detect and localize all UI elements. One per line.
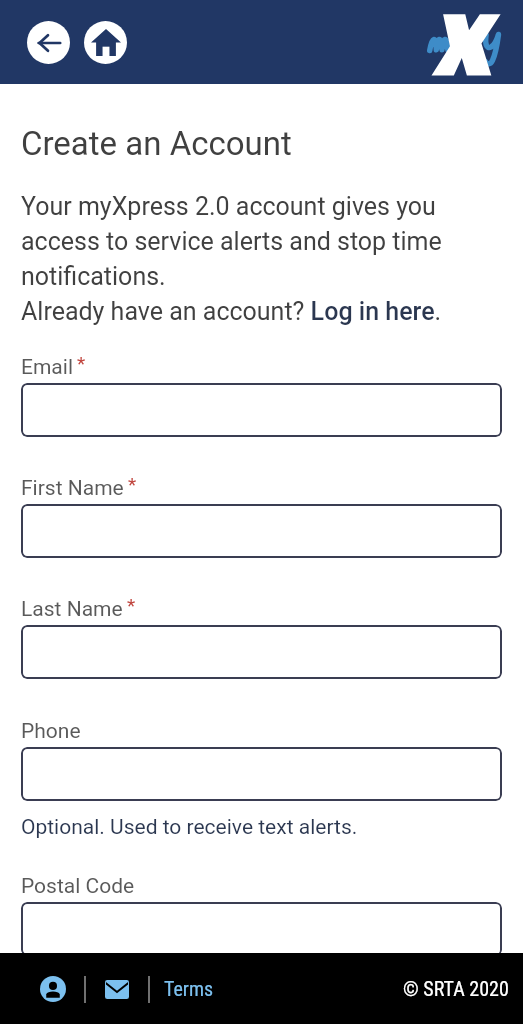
staticText: © SRTA 2020 <box>403 977 509 1001</box>
button[interactable] <box>21 902 502 956</box>
staticText: Postal Code <box>21 874 135 898</box>
button[interactable] <box>21 383 502 437</box>
button[interactable] <box>21 747 502 801</box>
staticText: * <box>127 595 136 617</box>
staticText: * <box>128 474 137 496</box>
staticText: Terms <box>164 977 214 1001</box>
staticText: First Name <box>21 476 124 500</box>
staticText: Optional. Used to receive text alerts. <box>21 814 358 839</box>
staticText: Your myXpress 2.0 account gives you acce… <box>21 187 502 292</box>
button[interactable]: Account <box>36 972 70 1006</box>
staticText: * <box>77 353 86 375</box>
button[interactable]: Email us <box>100 972 134 1006</box>
staticText: Phone <box>21 719 81 743</box>
button[interactable]: Home <box>84 21 127 64</box>
button[interactable] <box>21 625 502 679</box>
staticText: Already have an account? Log in here. <box>21 292 442 327</box>
staticText: Email <box>21 355 73 379</box>
staticText: Last Name <box>21 597 123 621</box>
button[interactable]: Back <box>27 21 70 64</box>
button[interactable] <box>21 504 502 558</box>
button[interactable]: Terms <box>164 971 214 1007</box>
staticText: Create an Account <box>21 123 292 163</box>
